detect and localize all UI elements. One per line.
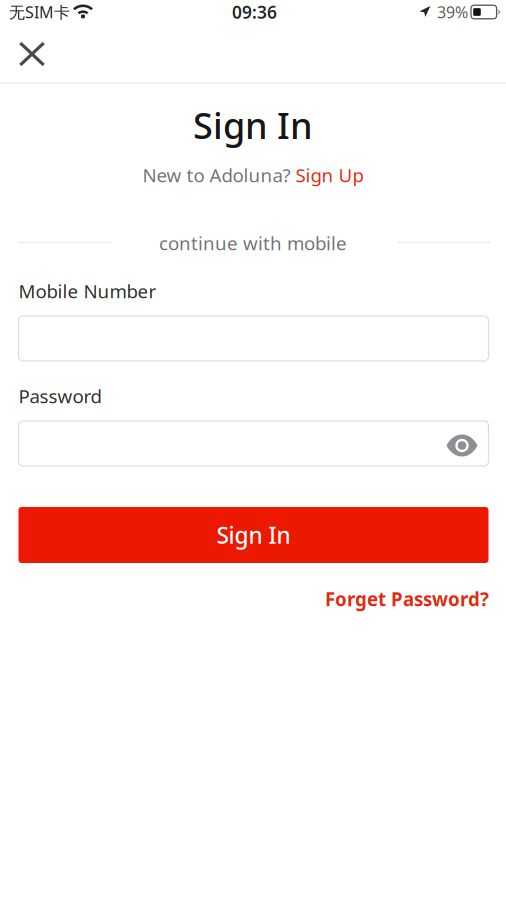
button[interactable]: Forget Password? xyxy=(325,587,489,611)
button[interactable]: Show password xyxy=(436,423,488,468)
button[interactable]: Sign In xyxy=(18,507,488,563)
staticText: Password xyxy=(18,384,101,408)
staticText: 39% xyxy=(437,1,468,23)
staticText: Sign Up xyxy=(295,163,363,187)
staticText: Sign In xyxy=(216,520,290,550)
staticText: New to Adoluna? xyxy=(142,163,295,187)
staticText: 无SIM卡 xyxy=(9,1,70,23)
staticText: Forget Password? xyxy=(325,587,489,611)
button[interactable]: Sign Up xyxy=(295,163,363,187)
staticText: Mobile Number xyxy=(18,279,156,303)
staticText: 09:36 xyxy=(232,0,277,23)
staticText: Sign In xyxy=(193,101,313,149)
button[interactable]: Close xyxy=(0,29,64,81)
staticText: continue with mobile xyxy=(159,231,347,255)
